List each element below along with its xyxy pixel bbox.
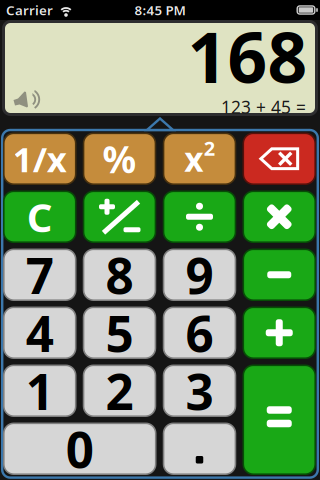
button[interactable]: 0 xyxy=(3,422,156,475)
staticText: 0 xyxy=(66,416,94,480)
staticText: x xyxy=(184,137,203,181)
staticText: 4 xyxy=(26,300,54,365)
staticText: 1 xyxy=(26,358,54,423)
button[interactable]: C xyxy=(3,190,76,243)
button[interactable]: 8 xyxy=(83,248,156,301)
button[interactable]: 5 xyxy=(83,306,156,359)
button[interactable]: 1 xyxy=(3,364,76,417)
button[interactable]: Delete xyxy=(242,132,316,185)
button[interactable]: 3 xyxy=(163,364,236,417)
button[interactable]: Divide xyxy=(163,190,236,243)
button[interactable]: 2 xyxy=(83,364,156,417)
staticText: 2 xyxy=(105,358,133,423)
staticText: 168 xyxy=(187,10,307,102)
button[interactable]: Plus minus xyxy=(83,190,156,243)
button[interactable]: x xyxy=(163,132,236,185)
staticText: 9 xyxy=(185,242,213,307)
staticText: 123 + 45 = xyxy=(221,95,306,118)
staticText: 3 xyxy=(185,358,213,423)
staticText: Carrier xyxy=(6,1,53,19)
staticText: 1/x xyxy=(13,136,67,182)
staticText: 7 xyxy=(26,242,54,307)
button[interactable]: % xyxy=(83,132,156,185)
button[interactable]: 7 xyxy=(3,248,76,301)
staticText: C xyxy=(27,190,53,243)
staticText: 5 xyxy=(105,300,133,365)
staticText: 6 xyxy=(185,300,213,365)
button[interactable]: 1/x xyxy=(3,132,76,185)
staticText: % xyxy=(102,134,136,184)
button[interactable]: 4 xyxy=(3,306,76,359)
button[interactable]: 9 xyxy=(163,248,236,301)
button[interactable]: Multiply xyxy=(242,190,316,243)
button[interactable]: 6 xyxy=(163,306,236,359)
button[interactable]: Decimal point xyxy=(163,422,236,475)
staticText: 8:45 PM xyxy=(134,1,185,19)
button[interactable]: Equals xyxy=(242,364,316,475)
button[interactable]: Plus xyxy=(242,306,316,359)
staticText: 2 xyxy=(204,135,215,161)
button[interactable]: Minus xyxy=(242,248,316,301)
staticText: 8 xyxy=(105,242,133,307)
